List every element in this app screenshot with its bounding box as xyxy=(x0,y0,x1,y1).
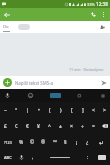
staticText: ° xyxy=(15,107,18,114)
staticText: ® xyxy=(41,139,46,146)
button[interactable]: Enter xyxy=(93,134,110,150)
staticText: ¿ xyxy=(86,139,89,146)
staticText: € xyxy=(26,123,29,130)
staticText: • xyxy=(38,107,40,114)
button[interactable]: Switch keyboard xyxy=(93,150,110,165)
button[interactable]: < xyxy=(88,102,99,118)
button[interactable]: : xyxy=(82,150,93,165)
button[interactable]: , xyxy=(27,150,38,165)
button[interactable]: ^ xyxy=(44,118,55,134)
staticText: [ xyxy=(71,107,73,114)
button[interactable]: ( xyxy=(44,102,55,118)
button[interactable]: ¡ xyxy=(71,134,82,150)
staticText: ~ xyxy=(4,107,7,114)
staticText: ÷ xyxy=(81,123,84,130)
staticText: × xyxy=(70,123,73,130)
staticText: < xyxy=(92,107,95,114)
staticText: ( xyxy=(49,107,51,114)
staticText: ABC xyxy=(4,155,12,160)
button[interactable]: Clipboard xyxy=(50,93,61,98)
staticText: ] xyxy=(82,107,84,114)
button[interactable]: Backspace xyxy=(99,118,110,134)
button[interactable]: Translate xyxy=(75,91,84,100)
button[interactable] xyxy=(18,24,30,30)
staticText: 12:38 xyxy=(96,1,108,7)
button[interactable]: ° xyxy=(11,102,22,118)
staticText: 33% xyxy=(87,2,95,7)
staticText: © xyxy=(30,139,35,146)
button[interactable]: ¥ xyxy=(33,118,44,134)
staticText: ↵ xyxy=(99,139,105,146)
button[interactable]: £ xyxy=(0,118,11,134)
staticText: : xyxy=(87,154,89,161)
button[interactable]: Stickers xyxy=(26,91,35,100)
button[interactable]: ~ xyxy=(0,102,11,118)
button[interactable]: More symbols xyxy=(0,134,16,150)
button[interactable]: % xyxy=(16,134,27,150)
button[interactable]: • xyxy=(33,102,44,118)
staticText: % xyxy=(19,139,24,146)
button[interactable]: ™ xyxy=(49,134,60,150)
button[interactable]: ± xyxy=(55,118,66,134)
button[interactable]: ® xyxy=(38,134,49,150)
button[interactable]: © xyxy=(27,134,38,150)
button[interactable]: ) xyxy=(55,102,66,118)
staticText: > xyxy=(103,107,106,114)
staticText: , xyxy=(32,154,34,161)
button[interactable]: Voice xyxy=(16,150,27,165)
staticText: = xyxy=(92,123,95,130)
button[interactable]: × xyxy=(66,118,77,134)
staticText: § xyxy=(64,139,67,146)
button[interactable]: Send xyxy=(98,77,109,88)
button[interactable]: § xyxy=(60,134,71,150)
button[interactable]: Space xyxy=(38,150,82,165)
button[interactable]: ] xyxy=(77,102,88,118)
staticText: 11 min · Dostavljeno xyxy=(69,67,104,72)
staticText: £ xyxy=(4,123,7,130)
staticText: ¡ xyxy=(76,139,78,146)
staticText: Do xyxy=(3,24,9,30)
staticText: ™ xyxy=(53,139,57,146)
staticText: ^ xyxy=(48,123,51,130)
button[interactable]: Add attachment xyxy=(3,78,12,87)
button[interactable]: > xyxy=(99,102,110,118)
button[interactable]: Settings xyxy=(98,91,107,100)
staticText: ¥ xyxy=(37,123,40,130)
staticText: ?123 xyxy=(4,140,12,145)
staticText: | xyxy=(26,107,29,114)
button[interactable]: [ xyxy=(66,102,77,118)
button[interactable]: Back xyxy=(2,10,12,20)
staticText: ± xyxy=(59,123,62,130)
button[interactable]: Call xyxy=(88,9,99,20)
button[interactable]: ¿ xyxy=(82,134,93,150)
button[interactable]: ÷ xyxy=(77,118,88,134)
staticText: ¢ xyxy=(15,123,18,130)
button[interactable]: ¢ xyxy=(11,118,22,134)
button[interactable]: € xyxy=(22,118,33,134)
staticText: Napiši tekst SMS-a xyxy=(15,80,53,86)
button[interactable]: | xyxy=(22,102,33,118)
staticText: ) xyxy=(60,107,62,114)
button[interactable]: Voice input xyxy=(3,91,12,100)
button[interactable]: Add recipient xyxy=(98,23,106,31)
button[interactable]: ABC xyxy=(0,150,16,165)
button[interactable]: = xyxy=(88,118,99,134)
button[interactable]: More options xyxy=(99,10,108,19)
